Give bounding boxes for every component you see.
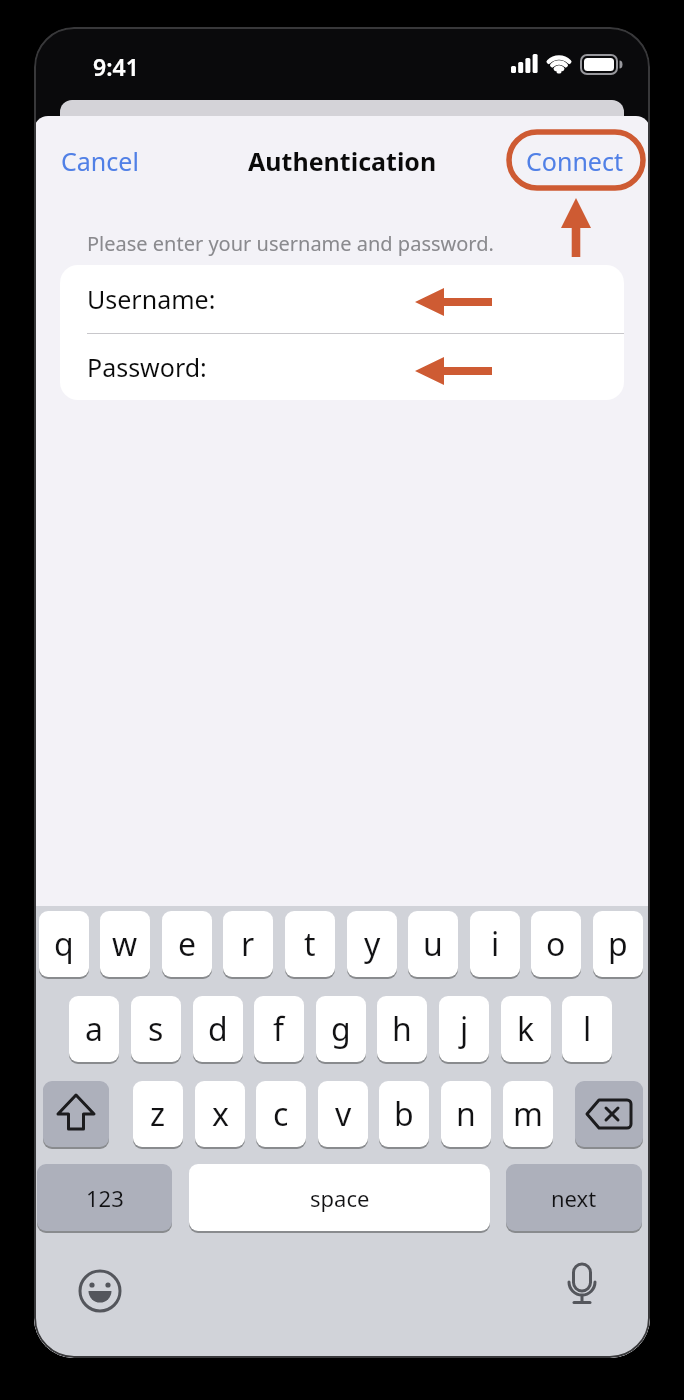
button[interactable]: n <box>441 1081 491 1147</box>
staticText: space <box>310 1183 370 1213</box>
button[interactable]: space <box>189 1164 490 1231</box>
staticText: q <box>54 922 74 966</box>
button[interactable]: u <box>408 911 458 977</box>
staticText: e <box>178 922 197 966</box>
button[interactable]: r <box>223 911 273 977</box>
button[interactable]: b <box>379 1081 429 1147</box>
staticText: t <box>304 922 316 966</box>
button[interactable]: j <box>439 996 489 1062</box>
button[interactable]: i <box>470 911 520 977</box>
staticText: 9:41 <box>93 51 139 82</box>
button[interactable]: k <box>501 996 551 1062</box>
button[interactable]: v <box>318 1081 368 1147</box>
button[interactable] <box>552 1261 612 1321</box>
button[interactable]: w <box>100 911 150 977</box>
staticText: m <box>513 1092 543 1136</box>
button[interactable]: l <box>562 996 612 1062</box>
button[interactable]: q <box>39 911 89 977</box>
button[interactable] <box>43 1081 109 1147</box>
staticText: u <box>423 922 443 966</box>
staticText: s <box>148 1007 164 1051</box>
staticText: z <box>150 1092 166 1136</box>
button[interactable]: h <box>377 996 427 1062</box>
staticText: o <box>546 922 566 966</box>
button[interactable]: a <box>69 996 119 1062</box>
staticText: g <box>331 1007 351 1051</box>
staticText: a <box>85 1007 103 1051</box>
button[interactable]: Connect <box>526 144 623 178</box>
staticText: Password: <box>87 350 207 384</box>
staticText: v <box>335 1092 352 1136</box>
button[interactable]: x <box>195 1081 245 1147</box>
staticText: Cancel <box>61 144 139 178</box>
staticText: Username: <box>87 282 216 316</box>
button[interactable]: 123 <box>37 1164 172 1231</box>
staticText: k <box>517 1007 535 1051</box>
button[interactable]: s <box>131 996 181 1062</box>
staticText: j <box>460 1007 469 1051</box>
button[interactable]: e <box>162 911 212 977</box>
button[interactable]: y <box>347 911 397 977</box>
staticText: n <box>456 1092 476 1136</box>
staticText: y <box>364 922 381 966</box>
staticText: l <box>583 1007 592 1051</box>
button[interactable]: Password: <box>60 334 624 400</box>
button[interactable]: next <box>506 1164 642 1231</box>
button[interactable]: g <box>316 996 366 1062</box>
button[interactable]: Username: <box>60 265 624 333</box>
button[interactable]: c <box>256 1081 306 1147</box>
staticText: d <box>208 1007 228 1051</box>
staticText: p <box>608 922 628 966</box>
staticText: i <box>491 922 500 966</box>
button[interactable]: m <box>503 1081 553 1147</box>
staticText: Connect <box>526 144 623 178</box>
button[interactable]: z <box>133 1081 183 1147</box>
staticText: h <box>392 1007 412 1051</box>
button[interactable]: t <box>285 911 335 977</box>
staticText: x <box>212 1092 229 1136</box>
staticText: Please enter your username and password. <box>87 230 494 257</box>
staticText: next <box>551 1183 597 1213</box>
staticText: c <box>273 1092 289 1136</box>
button[interactable]: Cancel <box>61 144 139 178</box>
staticText: f <box>273 1007 285 1051</box>
staticText: r <box>241 922 255 966</box>
staticText: Authentication <box>248 144 437 178</box>
button[interactable] <box>575 1081 643 1147</box>
staticText: w <box>112 922 138 966</box>
staticText: 123 <box>86 1183 124 1213</box>
staticText: b <box>394 1092 414 1136</box>
button[interactable]: p <box>593 911 643 977</box>
button[interactable] <box>70 1261 130 1321</box>
button[interactable]: f <box>254 996 304 1062</box>
button[interactable]: d <box>193 996 243 1062</box>
button[interactable]: o <box>531 911 581 977</box>
